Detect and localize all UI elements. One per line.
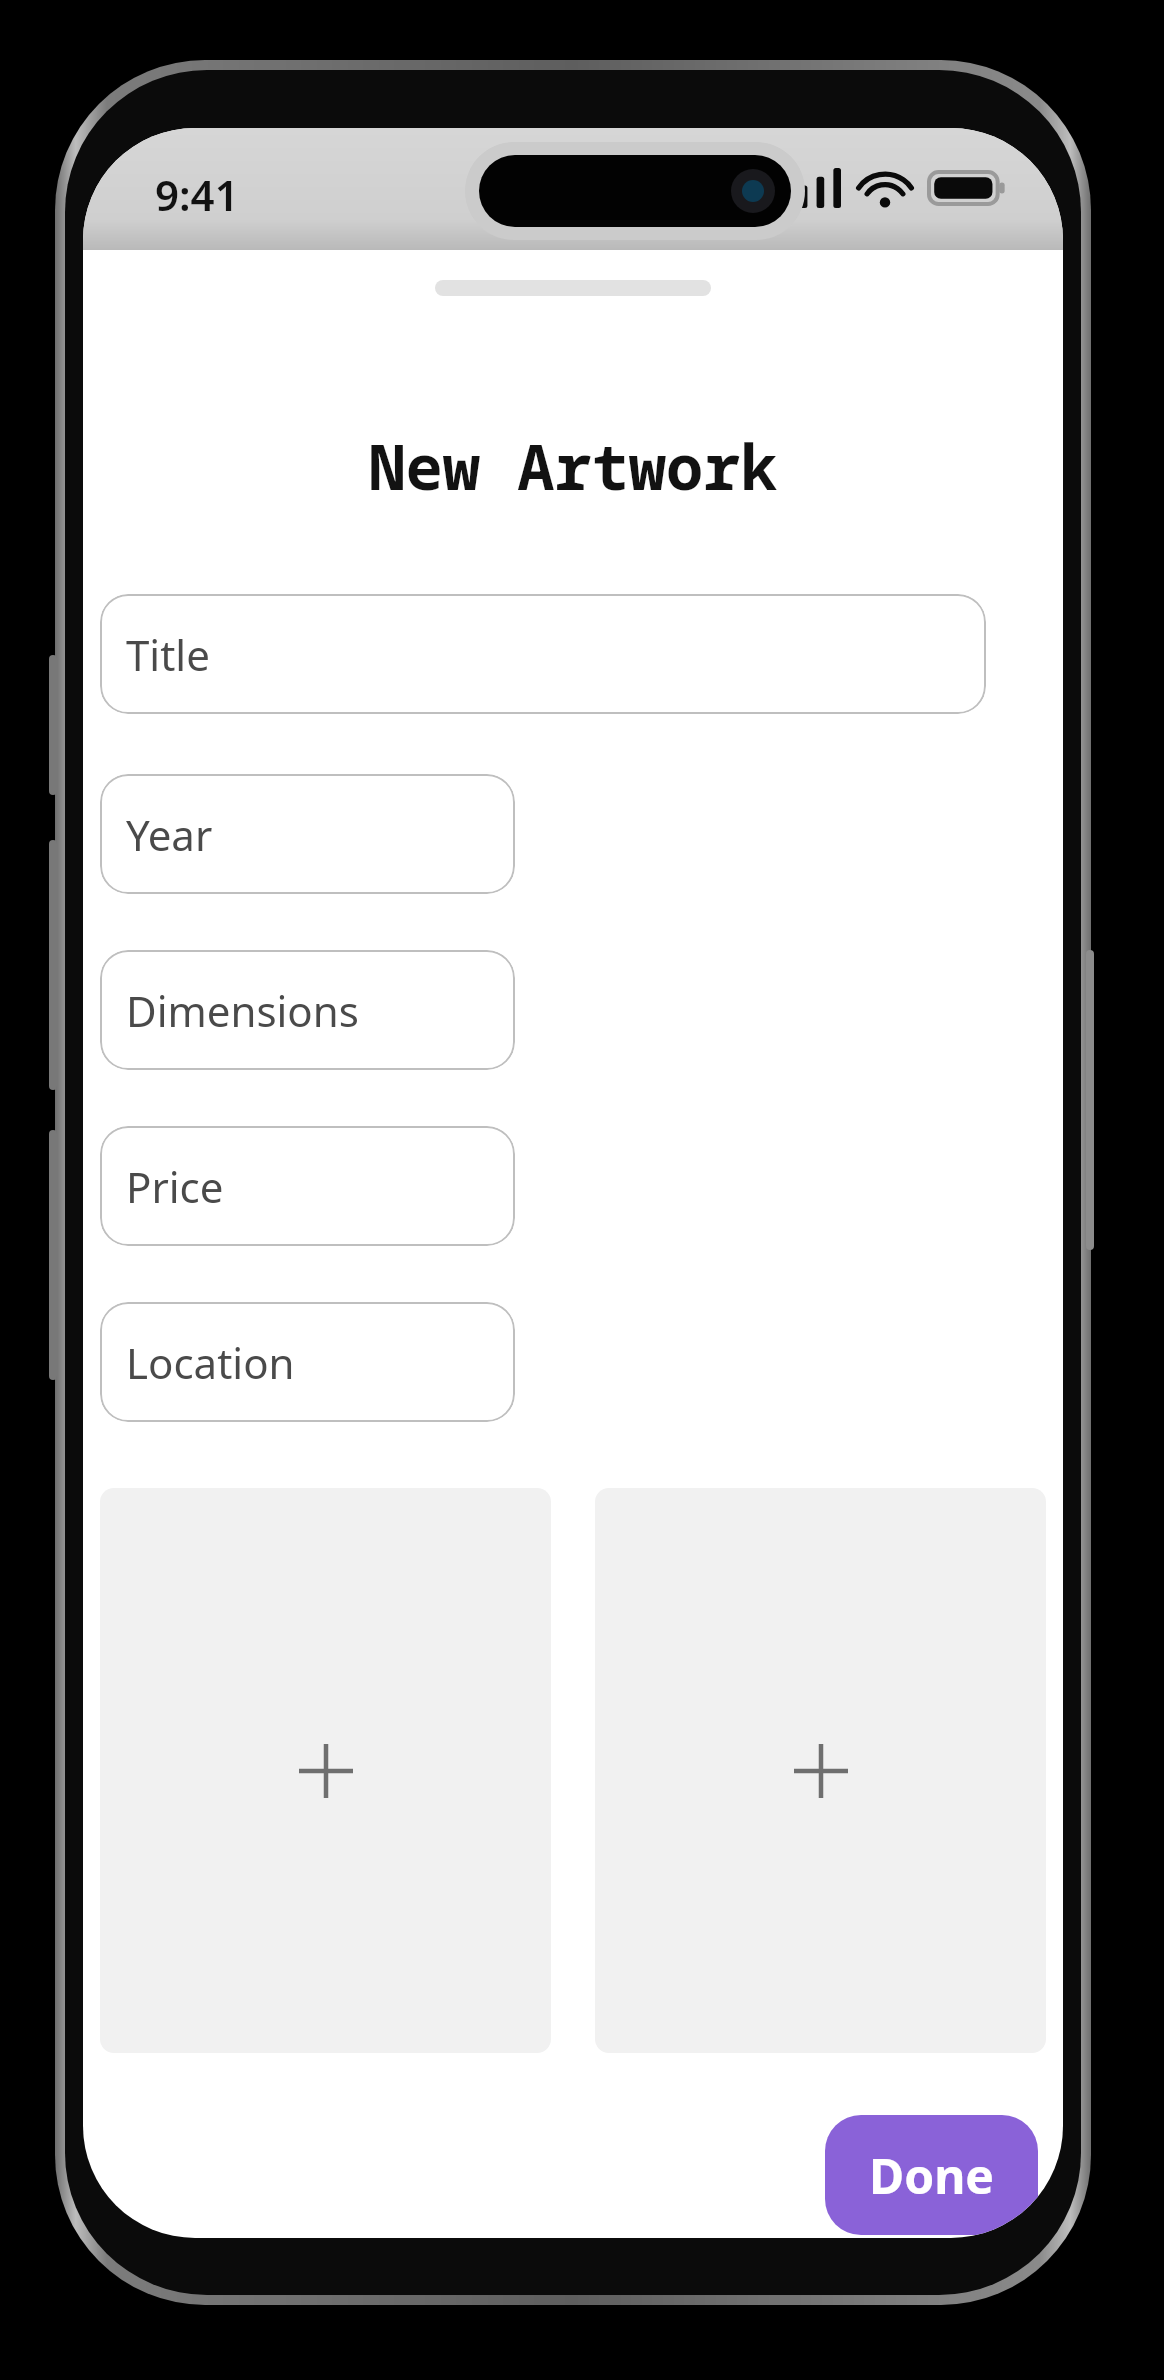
button[interactable]: Year	[100, 774, 515, 894]
staticText: Year	[126, 806, 213, 863]
staticText: New Artwork	[83, 424, 1063, 508]
button[interactable]: Done	[825, 2115, 1038, 2235]
button[interactable]: Dimensions	[100, 950, 515, 1070]
button[interactable]: Title	[100, 594, 986, 714]
button[interactable]	[435, 280, 711, 296]
button[interactable]: Price	[100, 1126, 515, 1246]
staticText: Title	[126, 626, 210, 683]
staticText: 9:41	[155, 166, 239, 223]
staticText: Price	[126, 1158, 224, 1215]
staticText: Location	[126, 1334, 295, 1391]
staticText: Dimensions	[126, 982, 359, 1039]
button[interactable]: Add image	[595, 1488, 1046, 2053]
button[interactable]: Location	[100, 1302, 515, 1422]
button[interactable]: Add image	[100, 1488, 551, 2053]
staticText: Done	[869, 2143, 994, 2208]
